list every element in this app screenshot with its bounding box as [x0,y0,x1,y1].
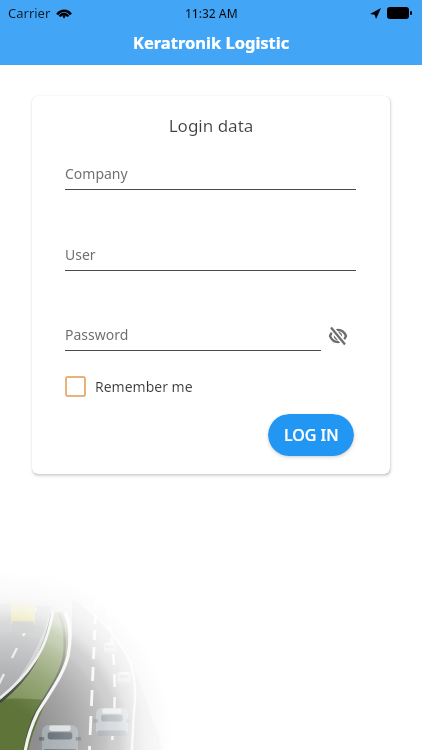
button[interactable]: Company [65,164,356,190]
staticText: Carrier [8,4,51,22]
button[interactable]: User [65,245,356,271]
button[interactable]: Show password [328,326,348,346]
staticText: 11:32 AM [185,5,238,21]
staticText: User [65,245,96,264]
staticText: Login data [32,114,390,137]
staticText: LOG IN [284,424,339,446]
button[interactable]: Password [65,325,321,351]
staticText: Password [65,325,129,344]
button[interactable]: Remember me [65,376,193,397]
button[interactable]: LOG IN [268,414,354,456]
staticText: Company [65,164,128,183]
staticText: Remember me [95,377,193,396]
staticText: Keratronik Logistic [133,31,290,53]
